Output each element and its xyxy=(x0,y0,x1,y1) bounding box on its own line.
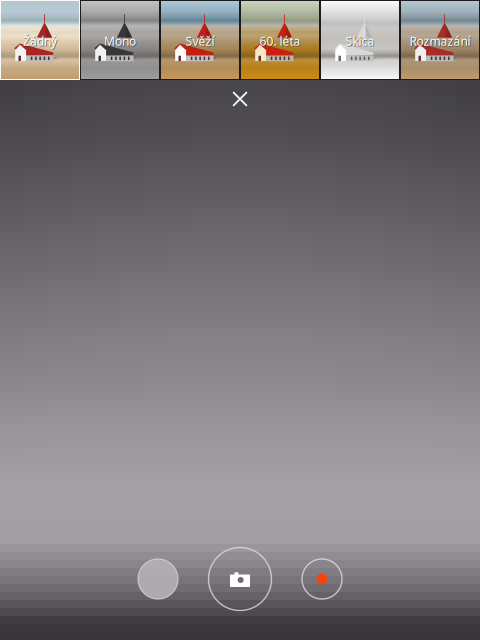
button[interactable]: Skica xyxy=(320,0,400,80)
staticText: Rozmazání xyxy=(410,34,471,50)
staticText: 60. léta xyxy=(259,33,300,49)
staticText: Mono xyxy=(104,33,136,49)
staticText: 60. léta xyxy=(260,34,301,50)
button[interactable]: Žádný xyxy=(0,0,80,80)
staticText: Skica xyxy=(346,34,375,50)
button[interactable]: 60. léta xyxy=(240,0,320,80)
staticText: Žádný xyxy=(23,33,57,49)
button[interactable]: Mono xyxy=(80,0,160,80)
button[interactable]: Svěží xyxy=(160,0,240,80)
staticText: Skica xyxy=(345,33,374,49)
button[interactable]: Last photo xyxy=(126,545,190,613)
button[interactable]: Close xyxy=(218,80,262,118)
button[interactable]: Record video xyxy=(290,545,354,613)
staticText: Rozmazání xyxy=(409,33,470,49)
staticText: Mono xyxy=(105,34,137,50)
button[interactable]: Take photo xyxy=(208,545,272,613)
staticText: Žádný xyxy=(24,34,58,50)
button[interactable]: Rozmazání xyxy=(400,0,480,80)
staticText: Svěží xyxy=(186,34,215,50)
staticText: Svěží xyxy=(185,33,214,49)
